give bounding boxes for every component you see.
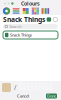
- button[interactable]: Pick colour from screen: [13, 83, 17, 92]
- button[interactable]: Colour wheel: [3, 7, 10, 14]
- staticText: Done: [47, 93, 56, 99]
- button[interactable]: Account: [53, 17, 57, 22]
- button[interactable]: Image palettes: [32, 7, 39, 14]
- staticText: /: [14, 83, 16, 92]
- button[interactable]: Colour sliders: [13, 7, 20, 14]
- staticText: Snack Things: [3, 15, 45, 24]
- staticText: Search: [9, 24, 21, 29]
- staticText: Colours: [21, 0, 40, 7]
- staticText: Cancel: [17, 93, 29, 99]
- button[interactable]: Colour palettes: [22, 7, 29, 14]
- button[interactable]: Done: [46, 93, 57, 98]
- button[interactable]: Crayons: [42, 8, 49, 14]
- button[interactable]: New list: [47, 17, 51, 22]
- staticText: Snack Things: [10, 32, 32, 38]
- button[interactable]: Add colour: [11, 2, 14, 5]
- button[interactable]: Cancel: [15, 93, 31, 98]
